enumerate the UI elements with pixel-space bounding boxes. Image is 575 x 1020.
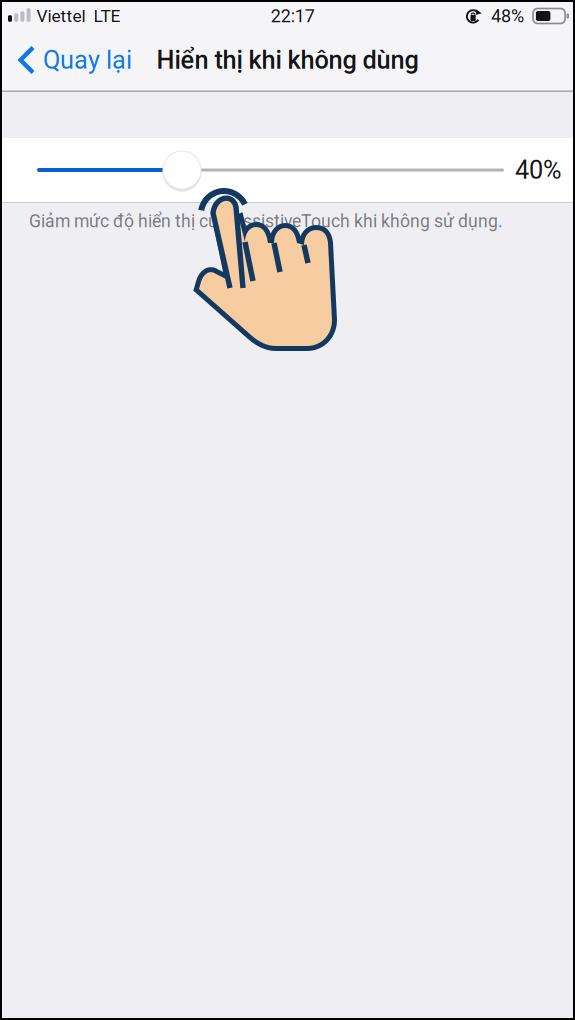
staticText: 40% <box>515 155 562 185</box>
staticText: 48% <box>491 5 524 27</box>
button[interactable]: Quay lại <box>2 30 146 90</box>
staticText: LTE <box>94 6 121 26</box>
staticText: Hiển thị khi không dùng <box>156 45 418 75</box>
staticText: Quay lại <box>43 45 132 75</box>
staticText: Viettel <box>37 6 86 26</box>
staticText: Giảm mức độ hiển thị của AssistiveTouch … <box>29 211 503 232</box>
staticText: 22:17 <box>271 5 315 27</box>
